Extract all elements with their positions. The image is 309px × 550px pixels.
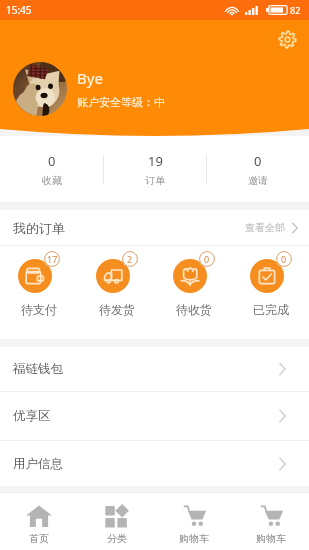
staticText: 19 — [148, 152, 163, 170]
button[interactable]: 用户信息 — [0, 441, 309, 486]
staticText: 0 — [281, 253, 287, 265]
button[interactable]: 0 — [0, 152, 103, 187]
staticText: 2 — [127, 253, 133, 265]
staticText: 已完成 — [253, 302, 289, 317]
button[interactable]: 17 — [0, 246, 78, 317]
staticText: Bye — [77, 68, 103, 88]
button[interactable]: 福链钱包 — [0, 347, 309, 391]
button[interactable]: 0 — [207, 152, 309, 187]
staticText: 0 — [48, 152, 56, 170]
staticText: 0 — [254, 152, 262, 170]
staticText: 福链钱包 — [13, 361, 63, 377]
staticText: 收藏 — [42, 174, 62, 187]
staticText: 账户安全等级：中 — [77, 95, 165, 109]
staticText: 82 — [290, 4, 301, 16]
staticText: 15:45 — [6, 3, 32, 17]
staticText: 邀请 — [248, 174, 268, 187]
staticText: 我的订单 — [13, 220, 65, 236]
button[interactable]: 分类 — [78, 498, 155, 545]
staticText: 分类 — [107, 532, 127, 545]
staticText: 17 — [47, 253, 58, 265]
button[interactable]: 购物车 — [155, 498, 232, 545]
staticText: 首页 — [29, 532, 49, 545]
staticText: 购物车 — [179, 532, 209, 545]
staticText: 待收货 — [176, 302, 212, 317]
button[interactable]: 0 — [232, 246, 309, 317]
button[interactable]: 2 — [78, 246, 155, 317]
staticText: 优享区 — [13, 408, 51, 424]
staticText: 订单 — [145, 174, 165, 187]
button[interactable]: 优享区 — [0, 392, 309, 440]
button[interactable]: 购物车 — [232, 498, 309, 545]
button[interactable]: Settings — [272, 24, 302, 54]
staticText: 用户信息 — [13, 456, 63, 472]
button[interactable]: 19 — [104, 152, 206, 187]
button[interactable]: 0 — [155, 246, 232, 317]
staticText: 待支付 — [21, 302, 57, 317]
staticText: 0 — [204, 253, 210, 265]
button[interactable]: 首页 — [0, 498, 78, 545]
button[interactable]: 我的订单 — [0, 210, 309, 245]
staticText: 查看全部 — [245, 221, 285, 234]
staticText: 购物车 — [256, 532, 286, 545]
staticText: 待发货 — [99, 302, 135, 317]
